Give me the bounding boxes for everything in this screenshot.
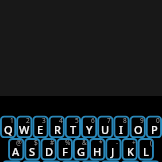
staticText: I [119, 122, 123, 137]
button[interactable]: O [130, 116, 146, 138]
staticText: E [37, 122, 44, 137]
staticText: 3 [42, 116, 46, 125]
staticText: 9 [140, 116, 144, 125]
button[interactable]: I [113, 116, 129, 138]
staticText: 6 [91, 116, 95, 125]
staticText: * [99, 138, 103, 147]
button[interactable]: E [32, 116, 48, 138]
button[interactable]: A [8, 138, 24, 160]
button[interactable]: D [41, 138, 57, 160]
button[interactable]: P [146, 116, 162, 138]
staticText: 4 [59, 116, 63, 125]
staticText: @ [16, 138, 22, 147]
staticText: ( [150, 138, 152, 147]
staticText: 0 [156, 116, 160, 125]
staticText: # [50, 138, 55, 147]
staticText: - [116, 138, 119, 147]
staticText: 5 [75, 116, 79, 125]
button[interactable]: T [65, 116, 81, 138]
button[interactable]: K [122, 138, 138, 160]
staticText: & [82, 138, 87, 147]
button[interactable]: J [105, 138, 121, 160]
staticText: 7 [107, 116, 111, 125]
staticText: % [65, 138, 71, 147]
staticText: T [70, 122, 77, 137]
button[interactable]: Y [81, 116, 97, 138]
button[interactable]: R [49, 116, 65, 138]
staticText: L [143, 144, 149, 159]
staticText: S [29, 144, 36, 159]
button[interactable]: H [89, 138, 105, 160]
staticText: $ [34, 138, 38, 147]
staticText: + [132, 138, 136, 147]
staticText: P [151, 122, 158, 137]
staticText: W [19, 122, 30, 137]
staticText: R [54, 122, 61, 137]
staticText: 2 [26, 116, 30, 125]
staticText: G [77, 144, 85, 159]
staticText: Y [86, 122, 93, 137]
button[interactable]: S [24, 138, 40, 160]
button[interactable]: G [73, 138, 89, 160]
staticText: 1 [10, 116, 14, 125]
staticText: H [93, 144, 102, 159]
staticText: U [101, 122, 110, 137]
button[interactable]: U [97, 116, 113, 138]
staticText: A [12, 144, 20, 159]
staticText: O [134, 122, 143, 137]
button[interactable]: F [57, 138, 73, 160]
staticText: K [127, 144, 134, 159]
button[interactable]: L [138, 138, 154, 160]
staticText: J [111, 144, 115, 159]
staticText: D [45, 144, 54, 159]
button[interactable]: Q [0, 116, 16, 138]
button[interactable]: W [16, 116, 32, 138]
staticText: F [62, 144, 68, 159]
staticText: 8 [123, 116, 127, 125]
staticText: Q [4, 122, 13, 137]
